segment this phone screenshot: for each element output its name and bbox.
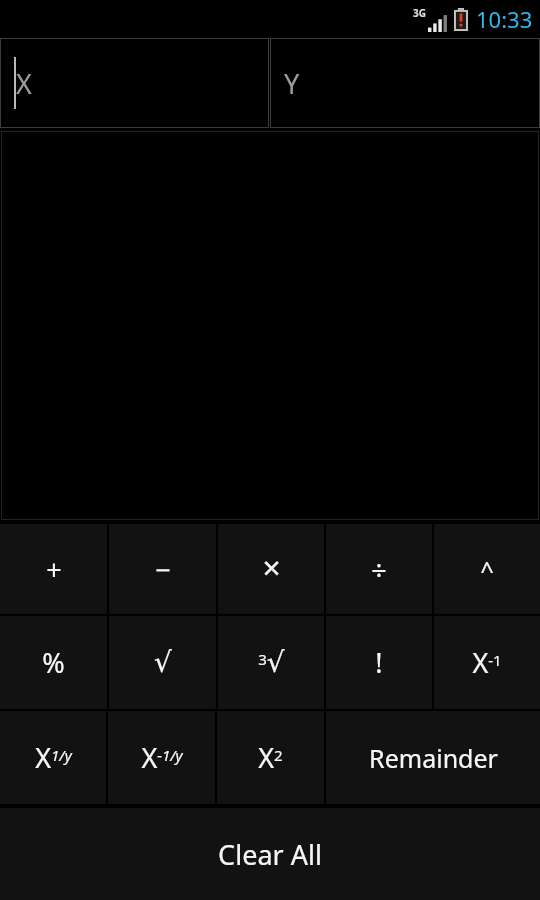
button[interactable]: X <box>0 38 269 128</box>
button[interactable]: ^ <box>434 524 540 614</box>
button[interactable]: X-1/y <box>108 711 215 804</box>
staticText: X-1 <box>472 644 502 681</box>
button[interactable]: √ <box>109 616 216 709</box>
staticText: % <box>42 644 65 681</box>
staticText: Clear All <box>218 836 322 873</box>
staticText: 3G <box>413 6 426 20</box>
staticText: ✕ <box>261 555 282 583</box>
staticText: 10:33 <box>476 4 533 34</box>
staticText: X-1/y <box>141 739 183 776</box>
button[interactable]: ✕ <box>218 524 324 614</box>
button[interactable]: Y <box>270 38 540 128</box>
staticText: ! <box>375 644 383 681</box>
staticText: Remainder <box>369 741 498 775</box>
button[interactable]: ÷ <box>326 524 432 614</box>
button[interactable]: Result display <box>1 131 539 520</box>
staticText: √ <box>154 646 172 679</box>
button[interactable]: Remainder <box>326 711 540 804</box>
staticText: 3√ <box>258 646 285 679</box>
button[interactable]: ! <box>326 616 432 709</box>
button[interactable]: 3√ <box>218 616 324 709</box>
staticText: + <box>46 551 62 588</box>
staticText: ^ <box>480 553 494 586</box>
button[interactable]: % <box>0 616 107 709</box>
staticText: − <box>155 551 171 588</box>
button[interactable]: X1/y <box>0 711 106 804</box>
staticText: ÷ <box>371 551 387 588</box>
staticText: X2 <box>258 739 283 776</box>
staticText: X1/y <box>35 739 72 776</box>
button[interactable]: X2 <box>217 711 324 804</box>
staticText: X <box>16 65 32 102</box>
button[interactable]: X-1 <box>434 616 540 709</box>
button[interactable]: Clear All <box>0 808 540 900</box>
button[interactable]: − <box>109 524 216 614</box>
staticText: Y <box>284 65 300 102</box>
button[interactable]: + <box>0 524 107 614</box>
